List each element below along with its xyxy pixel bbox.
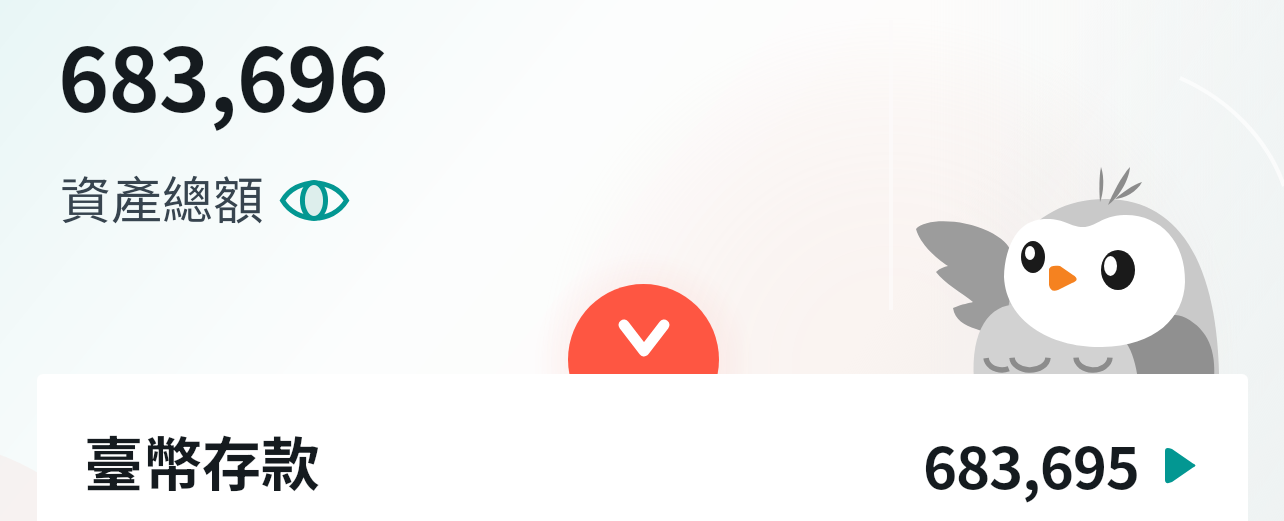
button[interactable]: 資產總額 [60,160,349,234]
button[interactable]: Expand [568,284,719,435]
staticText: 資產總額 [60,160,265,234]
staticText: 臺幣存款 [84,418,321,503]
button[interactable]: 臺幣存款 [37,374,1248,521]
staticText: 683,696 [58,11,388,137]
staticText: 683,695 [923,423,1139,507]
